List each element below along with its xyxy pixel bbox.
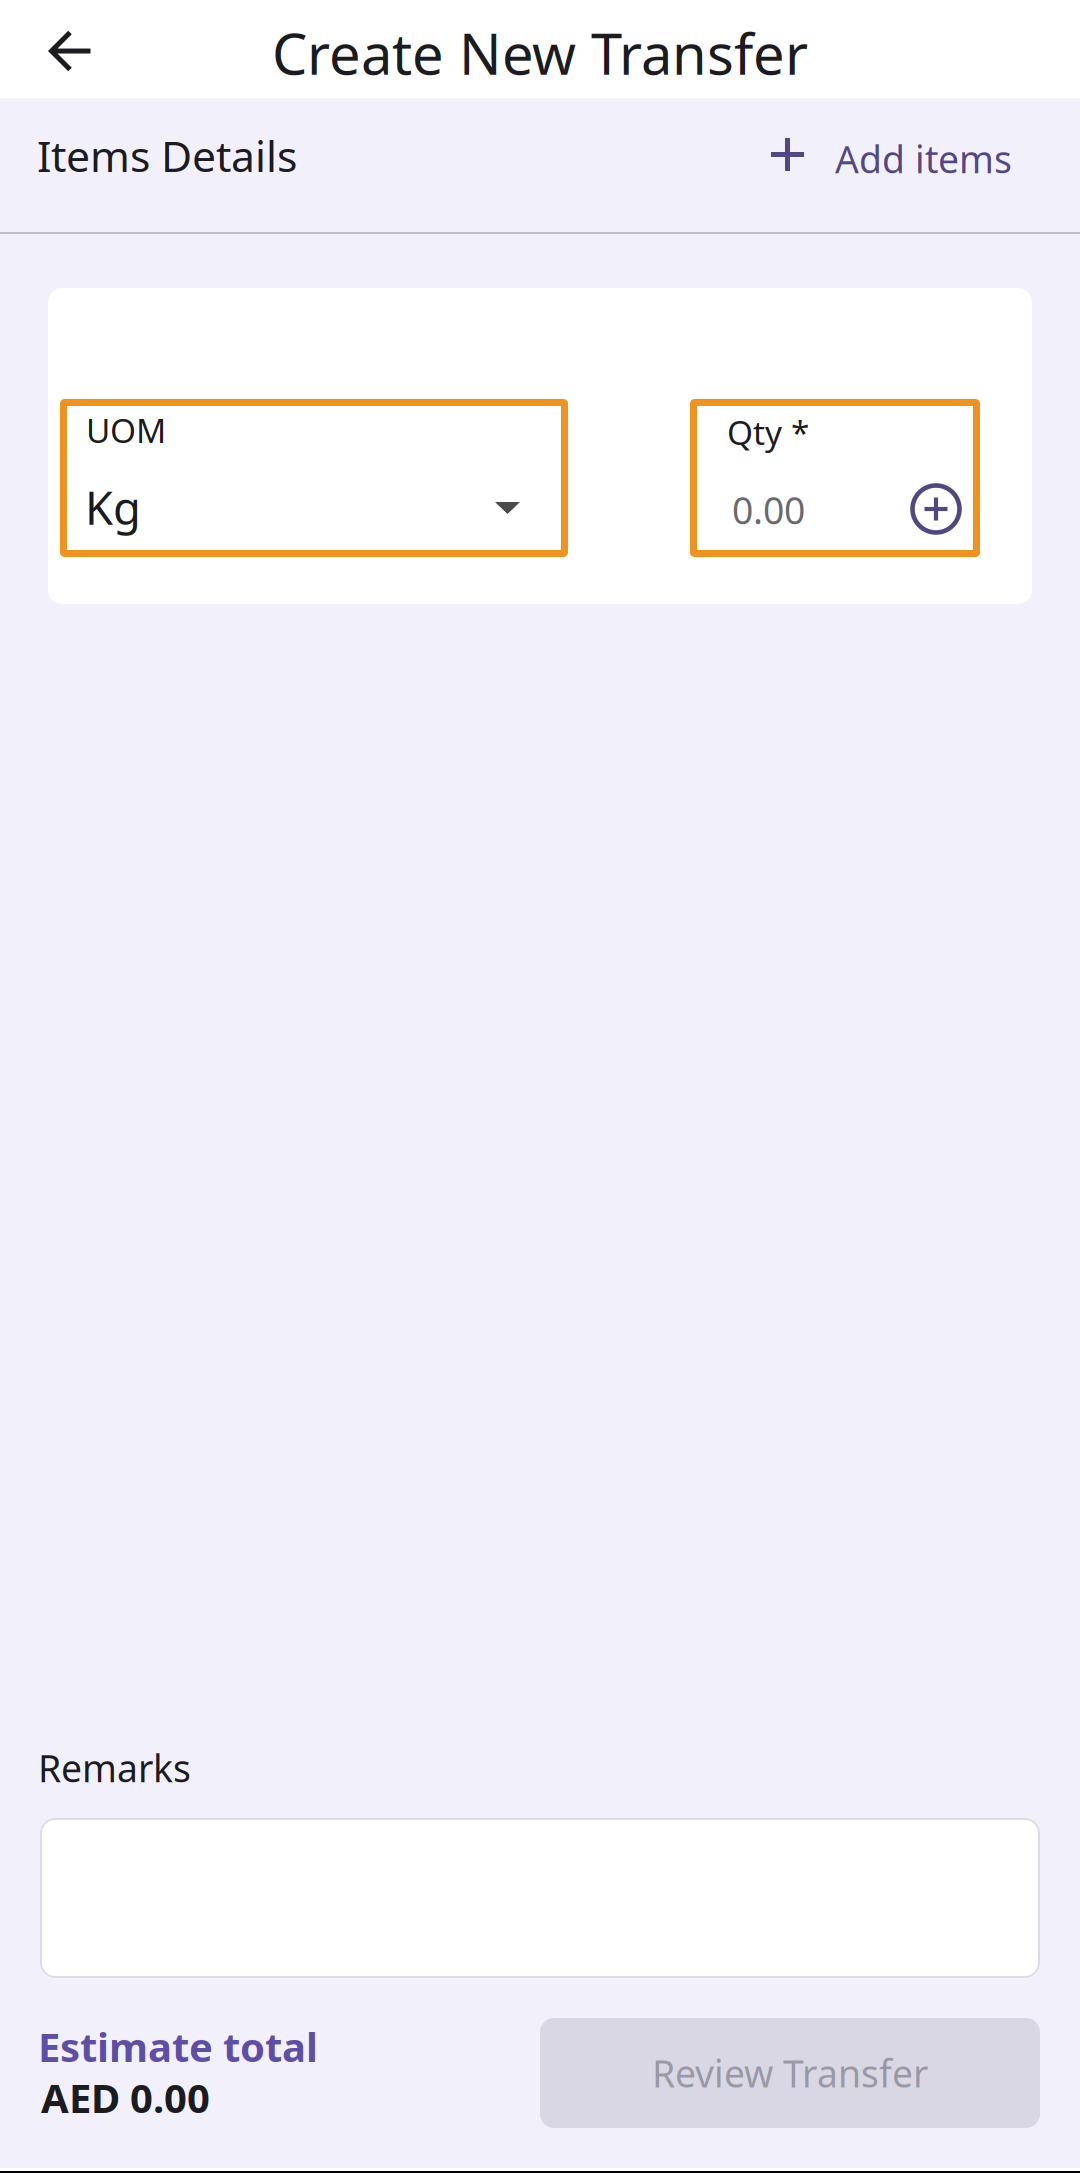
staticText: Estimate total: [38, 2020, 318, 2073]
button[interactable]: Qty *: [690, 399, 980, 557]
staticText: AED 0.00: [41, 2071, 210, 2124]
staticText: UOM: [86, 408, 166, 452]
staticText: Create New Transfer: [272, 16, 808, 90]
button[interactable]: Review Transfer: [540, 2018, 1040, 2128]
staticText: Qty *: [727, 410, 809, 454]
staticText: Items Details: [37, 127, 297, 184]
button[interactable]: UOM: [60, 399, 568, 557]
staticText: 0.00: [732, 485, 805, 535]
button[interactable]: Back: [19, 2, 123, 100]
staticText: Review Transfer: [652, 2048, 928, 2098]
staticText: Remarks: [38, 1743, 191, 1793]
staticText: Add items: [835, 134, 1012, 184]
button[interactable]: Increase quantity: [910, 483, 962, 535]
staticText: Kg: [85, 477, 141, 537]
button[interactable]: Add items: [753, 106, 1035, 202]
